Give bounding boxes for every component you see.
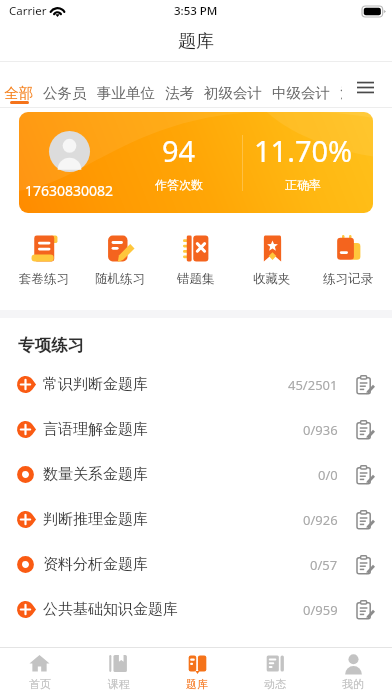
staticText: 课程: [108, 677, 130, 691]
button[interactable]: 套卷练习: [6, 235, 82, 287]
button[interactable]: 练习记录: [310, 235, 386, 287]
staticText: 收藏夹: [253, 271, 291, 287]
staticText: 正确率: [285, 177, 321, 192]
button[interactable]: 首页: [0, 648, 79, 696]
staticText: 我的: [342, 677, 364, 691]
staticText: 练习记录: [323, 271, 373, 287]
staticText: 判断推理金题库: [43, 510, 148, 529]
staticText: 11.70%: [254, 131, 353, 170]
staticText: 94: [162, 131, 196, 170]
staticText: 言语理解金题库: [43, 420, 148, 439]
staticText: 常识判断金题库: [43, 375, 148, 394]
button[interactable]: 言语理解金题库: [0, 407, 392, 452]
button[interactable]: 初级会计: [199, 84, 267, 102]
button[interactable]: 事业单位: [92, 84, 160, 102]
button[interactable]: 课程: [79, 648, 158, 696]
staticText: Carrier: [9, 3, 47, 19]
staticText: 资料分析金题库: [43, 555, 148, 574]
button[interactable]: 资料分析金题库: [0, 542, 392, 587]
staticText: 45/2501: [288, 376, 338, 394]
staticText: 注: [340, 84, 342, 102]
button[interactable]: 17630830082: [19, 112, 373, 213]
staticText: 动态: [264, 677, 286, 691]
staticText: 3:53 PM: [174, 3, 218, 19]
staticText: 公务员: [43, 84, 87, 102]
staticText: 错题集: [177, 271, 215, 287]
staticText: 事业单位: [97, 84, 155, 102]
button[interactable]: 题库: [158, 648, 236, 696]
staticText: 0/0: [318, 466, 338, 484]
staticText: 0/57: [310, 556, 338, 574]
button[interactable]: 收藏夹: [234, 235, 310, 287]
button[interactable]: 注: [335, 84, 347, 102]
button[interactable]: 判断推理金题库: [0, 497, 392, 542]
staticText: 首页: [29, 677, 51, 691]
staticText: 作答次数: [155, 177, 203, 192]
button[interactable]: 随机练习: [82, 235, 158, 287]
staticText: 中级会计: [272, 84, 330, 102]
staticText: 套卷练习: [19, 271, 69, 287]
button[interactable]: 数量关系金题库: [0, 452, 392, 497]
button[interactable]: 动态: [236, 648, 314, 696]
button[interactable]: 常识判断金题库: [0, 362, 392, 407]
staticText: 随机练习: [95, 271, 145, 287]
staticText: 数量关系金题库: [43, 465, 148, 484]
staticText: 公共基础知识金题库: [43, 600, 178, 619]
button[interactable]: 我的: [314, 648, 392, 696]
button[interactable]: 公务员: [38, 84, 92, 102]
staticText: 全部: [4, 84, 33, 102]
button[interactable]: 法考: [160, 84, 199, 102]
button[interactable]: 公共基础知识金题库: [0, 587, 392, 632]
staticText: 0/959: [303, 601, 338, 619]
staticText: 专项练习: [18, 335, 84, 356]
staticText: 初级会计: [204, 84, 262, 102]
staticText: 17630830082: [25, 181, 114, 200]
staticText: 题库: [186, 677, 208, 691]
button[interactable]: 中级会计: [267, 84, 335, 102]
staticText: 题库: [178, 30, 214, 53]
button[interactable]: 错题集: [158, 235, 234, 287]
staticText: 法考: [165, 84, 194, 102]
button[interactable]: 全部: [0, 84, 38, 102]
button[interactable]: All categories: [348, 62, 383, 107]
staticText: 0/936: [303, 421, 338, 439]
staticText: 0/926: [303, 511, 338, 529]
